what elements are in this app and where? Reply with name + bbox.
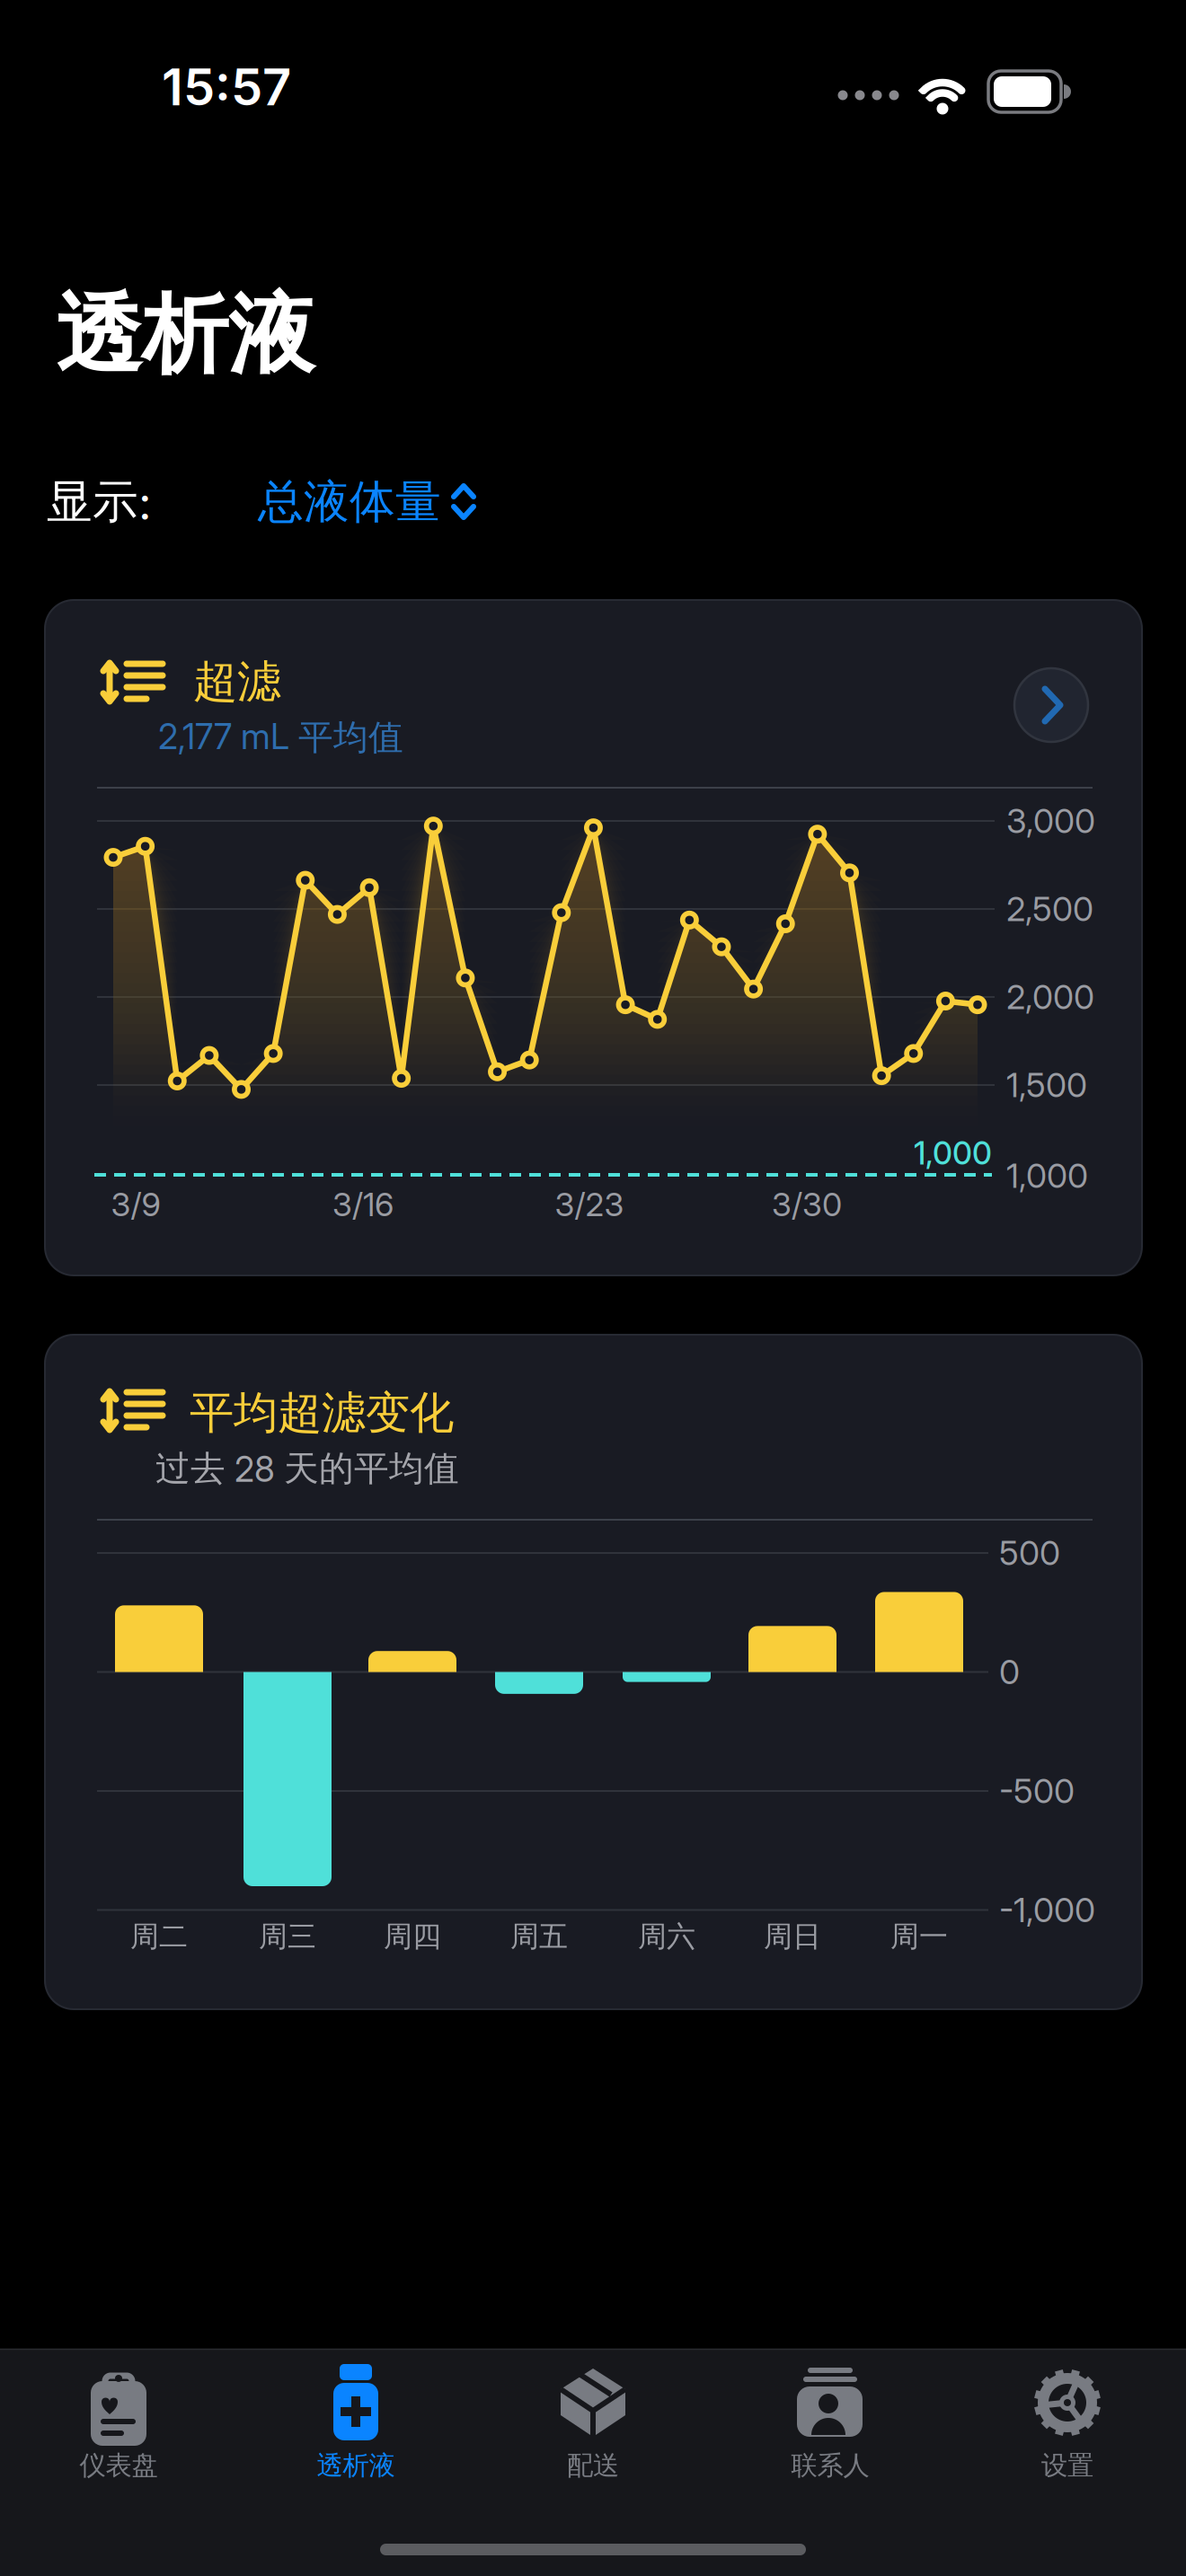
button[interactable]: 仪表盘 [0, 2349, 237, 2483]
staticText: 周五 [510, 1919, 568, 1954]
staticText: 周日 [764, 1919, 821, 1954]
staticText: 周一 [890, 1919, 948, 1954]
staticText: 显示: [47, 474, 152, 530]
staticText: 仪表盘 [80, 2449, 158, 2482]
staticText: 过去 28 天的平均值 [155, 1447, 459, 1490]
staticText: 3/23 [555, 1185, 624, 1224]
staticText: 3/9 [111, 1185, 160, 1224]
staticText: 配送 [567, 2449, 619, 2482]
staticText: 联系人 [791, 2449, 869, 2482]
staticText: 3,000 [1006, 801, 1095, 841]
staticText: -500 [999, 1771, 1075, 1811]
staticText: 2,500 [1006, 889, 1093, 929]
staticText: 总液体量 [258, 474, 441, 530]
staticText: 周六 [638, 1919, 695, 1954]
staticText: 3/16 [332, 1185, 394, 1224]
staticText: 1,500 [1006, 1065, 1087, 1105]
staticText: 周三 [259, 1919, 316, 1954]
staticText: 超滤 [193, 655, 281, 709]
staticText: 平均超滤变化 [190, 1386, 454, 1440]
staticText: 透析液 [317, 2449, 395, 2482]
staticText: 透析液 [56, 282, 314, 388]
staticText: 15:57 [162, 57, 291, 117]
staticText: 2,177 mL 平均值 [158, 716, 403, 759]
button[interactable]: 配送 [474, 2349, 712, 2483]
staticText: 周四 [384, 1919, 441, 1954]
staticText: 500 [999, 1533, 1060, 1573]
staticText: -1,000 [999, 1890, 1095, 1930]
button[interactable]: 设置 [949, 2349, 1186, 2483]
staticText: 2,000 [1006, 977, 1094, 1017]
staticText: 周二 [130, 1919, 188, 1954]
button[interactable]: 透析液 [237, 2349, 474, 2483]
staticText: 1,000 [1006, 1156, 1088, 1195]
staticText: 3/30 [772, 1185, 842, 1224]
staticText: 设置 [1041, 2449, 1093, 2482]
staticText: 0 [999, 1652, 1020, 1692]
staticText: 1,000 [914, 1135, 992, 1172]
button[interactable]: 查看超滤详情 [1013, 667, 1089, 743]
button[interactable]: 联系人 [712, 2349, 949, 2483]
button[interactable]: 总液体量 [258, 474, 475, 530]
